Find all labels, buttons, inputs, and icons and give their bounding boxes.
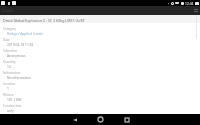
staticText: 101.1 KiB <box>7 97 22 101</box>
staticText: 2019-04-18 11:52 <box>7 42 34 46</box>
staticText: Filesize <box>3 93 14 97</box>
button[interactable]: More options <box>191 6 200 15</box>
staticText: only <box>7 108 14 112</box>
staticText: Location <box>3 82 16 86</box>
button[interactable]: Droid Global Explosion 2 - SC 3 60kg LM5… <box>0 15 200 23</box>
staticText: Constraction <box>3 104 22 108</box>
staticText: Submitter <box>3 49 18 53</box>
staticText: Bridge / Applied Constr <box>7 31 44 35</box>
staticText: No information <box>7 75 31 79</box>
staticText: Date <box>3 38 10 42</box>
staticText: Quantity <box>3 60 16 64</box>
staticText: Category <box>3 27 17 31</box>
staticText: 1 <box>7 86 9 90</box>
button[interactable]: Recents <box>121 114 132 125</box>
staticText: Anonymous <box>7 53 26 57</box>
staticText: 12 <box>7 64 11 68</box>
staticText: Information <box>3 71 21 75</box>
button[interactable]: Back <box>69 114 80 125</box>
staticText: Details <box>2 8 14 13</box>
staticText: Droid Global Explosion 2 - SC 3 60kg LM5… <box>3 18 85 23</box>
button[interactable]: Home <box>95 114 106 125</box>
staticText: 12:34 <box>185 1 194 5</box>
